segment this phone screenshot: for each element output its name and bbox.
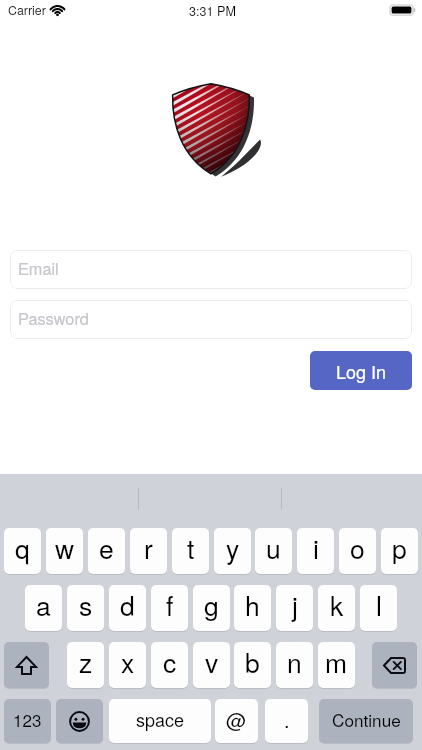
button[interactable]: d (109, 585, 146, 631)
staticText: Carrier (8, 1, 46, 19)
button[interactable]: g (193, 585, 230, 631)
button[interactable]: l (360, 585, 397, 631)
button[interactable]: w (46, 528, 83, 574)
staticText: v (205, 643, 219, 681)
button[interactable]: v (193, 642, 230, 688)
button[interactable]: h (234, 585, 271, 631)
button[interactable]: y (214, 528, 251, 574)
button[interactable]: c (151, 642, 188, 688)
button[interactable]: space (109, 699, 211, 743)
staticText: n (287, 643, 302, 681)
button[interactable]: Numbers and symbols (4, 699, 51, 743)
button[interactable]: @ (215, 699, 258, 743)
staticText: @ (226, 705, 247, 734)
button[interactable]: Log In (310, 351, 412, 390)
staticText: a (36, 586, 51, 624)
button[interactable]: k (318, 585, 355, 631)
staticText: 123 (13, 707, 42, 731)
staticText: t (187, 529, 195, 567)
button[interactable]: m (318, 642, 355, 688)
staticText: f (166, 586, 174, 624)
button[interactable]: u (255, 528, 292, 574)
button[interactable]: Emoji (56, 699, 103, 743)
button[interactable]: b (234, 642, 271, 688)
button[interactable]: Password (10, 300, 412, 339)
staticText: o (350, 529, 365, 567)
button[interactable]: Email (10, 250, 412, 289)
staticText: . (284, 705, 290, 734)
staticText: m (325, 643, 348, 681)
button[interactable]: j (276, 585, 313, 631)
staticText: z (79, 643, 93, 681)
button[interactable]: n (276, 642, 313, 688)
button[interactable]: Continue (319, 699, 413, 743)
staticText: Log In (336, 358, 387, 384)
button[interactable]: Shift (4, 642, 49, 688)
button[interactable]: t (172, 528, 209, 574)
staticText: space (136, 706, 185, 732)
staticText: 3:31 PM (189, 2, 236, 20)
staticText: u (266, 529, 281, 567)
staticText: i (313, 529, 319, 567)
staticText: j (292, 586, 298, 624)
button[interactable]: r (130, 528, 167, 574)
button[interactable]: a (25, 585, 62, 631)
staticText: d (120, 586, 135, 624)
button[interactable]: x (109, 642, 146, 688)
staticText: e (99, 529, 114, 567)
button[interactable]: . (265, 699, 308, 743)
button[interactable]: p (381, 528, 418, 574)
staticText: w (55, 529, 75, 567)
staticText: Email (18, 256, 59, 279)
button[interactable]: s (67, 585, 104, 631)
button[interactable]: f (151, 585, 188, 631)
staticText: y (226, 529, 240, 567)
staticText: p (392, 529, 407, 567)
button[interactable]: e (88, 528, 125, 574)
staticText: g (204, 586, 219, 624)
staticText: x (121, 643, 135, 681)
button[interactable]: z (67, 642, 104, 688)
button[interactable]: i (297, 528, 334, 574)
button[interactable]: q (4, 528, 41, 574)
staticText: l (376, 586, 382, 624)
staticText: b (245, 643, 260, 681)
staticText: q (15, 529, 30, 567)
button[interactable]: o (339, 528, 376, 574)
staticText: h (245, 586, 260, 624)
staticText: c (163, 643, 177, 681)
button[interactable]: Backspace (372, 642, 417, 688)
staticText: s (79, 586, 93, 624)
staticText: Continue (332, 707, 401, 732)
staticText: r (144, 529, 153, 567)
staticText: Password (18, 306, 89, 329)
staticText: k (330, 586, 344, 624)
